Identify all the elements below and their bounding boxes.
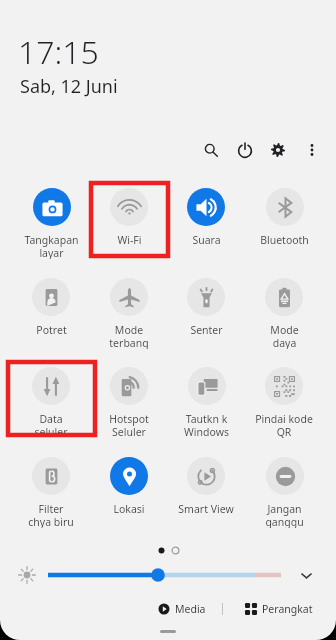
button[interactable]: Search <box>197 136 225 164</box>
button[interactable]: Settings <box>264 136 292 164</box>
staticText: Senter <box>190 323 223 337</box>
button[interactable]: Perangkat <box>245 602 313 616</box>
button[interactable]: Bluetooth <box>246 182 322 259</box>
staticText: Suara <box>192 233 221 247</box>
staticText: 17:15 <box>18 30 99 74</box>
staticText: Bluetooth <box>260 233 309 247</box>
staticText: Tangkapan layar <box>24 233 79 259</box>
button[interactable]: Expand <box>297 566 315 584</box>
button[interactable]: Lokasi <box>91 451 167 528</box>
staticText: Perangkat <box>262 602 313 616</box>
staticText: Sab, 12 Juni <box>20 74 118 99</box>
button[interactable]: Mode terbang <box>91 272 167 349</box>
button[interactable]: Tangkapan layar <box>13 182 89 259</box>
button[interactable]: Tautkn k Windows <box>168 361 244 438</box>
button[interactable]: Potret <box>13 272 89 349</box>
staticText: Lokasi <box>113 502 145 516</box>
button[interactable]: Wi-Fi <box>91 182 167 259</box>
button[interactable]: Suara <box>168 182 244 259</box>
staticText: Media <box>175 602 206 616</box>
staticText: Filter chya biru <box>28 502 74 528</box>
button[interactable]: Media <box>158 602 206 616</box>
staticText: Wi-Fi <box>117 233 142 247</box>
staticText: Smart View <box>178 502 234 516</box>
button[interactable]: Mode daya <box>246 272 322 349</box>
staticText: Mode terbang <box>109 323 149 349</box>
staticText: Tautkn k Windows <box>184 412 229 438</box>
button[interactable]: More options <box>298 136 326 164</box>
staticText: Hotspot Seluler <box>109 412 149 438</box>
staticText: Pindai kode QR <box>255 412 313 438</box>
staticText: Mode daya <box>270 323 299 349</box>
button[interactable]: Senter <box>168 272 244 349</box>
staticText: Potret <box>36 323 67 337</box>
button[interactable]: Smart View <box>168 451 244 528</box>
button[interactable]: Power <box>231 136 259 164</box>
button[interactable]: Jangan ganggu <box>246 451 322 528</box>
button[interactable]: Filter chya biru <box>13 451 89 528</box>
staticText: Data seluler <box>34 412 68 438</box>
button[interactable]: Pindai kode QR <box>246 361 322 438</box>
staticText: Jangan ganggu <box>265 502 304 528</box>
button[interactable]: Data seluler <box>13 361 89 438</box>
button[interactable]: Hotspot Seluler <box>91 361 167 438</box>
